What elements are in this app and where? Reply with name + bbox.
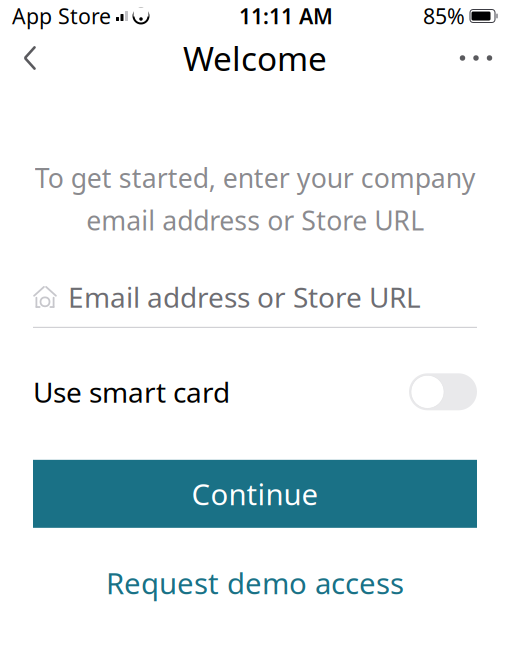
staticText: Continue	[191, 474, 318, 513]
button[interactable]: Back	[8, 34, 52, 82]
staticText: 11:11 AM	[239, 2, 333, 30]
button[interactable]: Continue	[33, 460, 477, 528]
staticText: Email address or Store URL	[68, 278, 421, 315]
staticText: 85%	[423, 2, 465, 30]
staticText: App Store	[12, 2, 111, 30]
staticText: Use smart card	[33, 373, 230, 410]
button[interactable]: Request demo access	[33, 566, 477, 600]
button[interactable]: More options	[450, 34, 502, 82]
button[interactable]: Use smart card	[0, 372, 510, 412]
staticText: To get started, enter your company email…	[34, 160, 475, 238]
staticText: Welcome	[183, 36, 327, 80]
staticText: Request demo access	[106, 563, 404, 602]
